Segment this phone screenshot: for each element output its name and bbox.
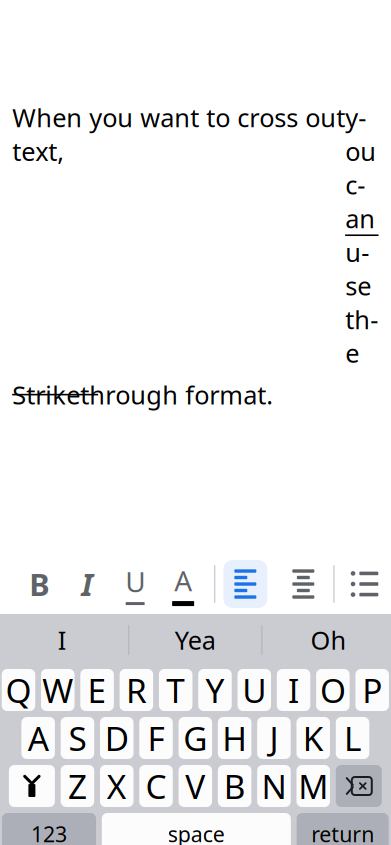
staticText: K — [303, 716, 324, 760]
staticText: N — [261, 764, 286, 808]
button[interactable]: W — [41, 669, 74, 711]
staticText: space — [168, 820, 225, 845]
button[interactable]: Bold — [16, 558, 62, 610]
staticText: O — [320, 668, 346, 712]
staticText: 123 — [31, 820, 67, 845]
button[interactable]: I — [0, 616, 128, 664]
staticText: T — [166, 668, 185, 712]
button[interactable]: U — [237, 669, 271, 711]
staticText: V — [185, 764, 205, 808]
staticText: H — [222, 716, 247, 760]
staticText: U — [242, 668, 266, 712]
button[interactable]: S — [61, 717, 94, 759]
button[interactable]: P — [355, 669, 389, 711]
staticText: L — [344, 716, 361, 760]
button[interactable]: Text color — [160, 558, 206, 610]
button[interactable]: return — [297, 813, 389, 845]
staticText: Oh — [310, 623, 346, 657]
button[interactable]: D — [100, 717, 133, 759]
button[interactable]: Bulleted list — [342, 560, 386, 608]
staticText: I — [81, 564, 93, 604]
button[interactable]: Y — [198, 669, 232, 711]
button[interactable]: O — [316, 669, 350, 711]
button[interactable]: L — [336, 717, 369, 759]
button[interactable]: space — [102, 813, 291, 845]
button[interactable]: Q — [2, 669, 35, 711]
button[interactable]: Align center — [281, 560, 325, 608]
button[interactable]: T — [159, 669, 192, 711]
button[interactable]: H — [218, 717, 251, 759]
staticText: D — [105, 716, 129, 760]
button[interactable]: K — [296, 717, 330, 759]
staticText: I — [58, 623, 67, 657]
button[interactable]: Shift — [9, 765, 55, 807]
button[interactable]: A — [21, 717, 55, 759]
staticText: A — [174, 562, 192, 599]
button[interactable]: Underline — [112, 558, 158, 610]
staticText: Y — [205, 668, 224, 712]
staticText: Yea — [175, 623, 216, 657]
button[interactable]: G — [179, 717, 212, 759]
button[interactable]: V — [179, 765, 212, 807]
staticText: R — [126, 668, 147, 712]
button[interactable]: Yea — [129, 616, 261, 664]
staticText: G — [183, 716, 207, 760]
staticText: C — [145, 764, 166, 808]
staticText: F — [147, 716, 164, 760]
button[interactable]: B — [218, 765, 251, 807]
staticText: I — [288, 668, 299, 712]
button[interactable]: M — [296, 765, 330, 807]
staticText: Q — [5, 668, 31, 712]
staticText: U — [125, 563, 145, 600]
staticText: you can use the — [345, 101, 378, 370]
button[interactable]: 123 — [2, 813, 96, 845]
staticText: S — [68, 716, 86, 760]
staticText: J — [269, 716, 278, 760]
staticText: E — [88, 668, 107, 712]
staticText: P — [362, 668, 382, 712]
button[interactable]: Z — [61, 765, 94, 807]
button[interactable]: R — [120, 669, 153, 711]
staticText: A — [28, 716, 49, 760]
button[interactable]: I — [277, 669, 310, 711]
staticText: return — [311, 820, 374, 845]
staticText: Z — [68, 764, 87, 808]
staticText: B — [29, 564, 49, 604]
staticText: X — [107, 764, 127, 808]
staticText: W — [42, 668, 73, 712]
staticText: When you want to cross out text, — [12, 101, 345, 168]
button[interactable]: Oh — [262, 616, 391, 664]
button[interactable]: N — [257, 765, 291, 807]
button[interactable]: F — [139, 717, 173, 759]
button[interactable]: E — [80, 669, 114, 711]
button[interactable]: Align left — [223, 560, 267, 608]
button[interactable]: Delete — [336, 765, 382, 807]
button[interactable]: C — [139, 765, 173, 807]
button[interactable]: X — [100, 765, 133, 807]
staticText: M — [298, 764, 328, 808]
staticText: Strikethrough format. — [12, 378, 273, 411]
staticText: B — [224, 764, 246, 808]
button[interactable]: J — [257, 717, 291, 759]
button[interactable]: Italic — [64, 558, 110, 610]
